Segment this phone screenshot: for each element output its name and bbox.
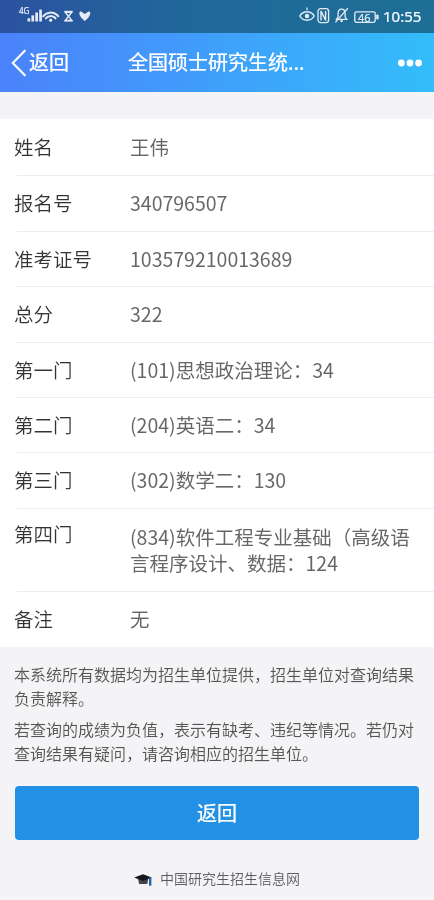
staticText: 返回 (197, 798, 237, 827)
button[interactable]: 返回 (0, 40, 83, 85)
staticText: 报名号 (14, 188, 130, 216)
staticText: 若查询的成绩为负值，表示有缺考、违纪等情况。若仍对查询结果有疑问，请咨询相应的招… (14, 717, 420, 764)
staticText: 总分 (14, 299, 130, 327)
staticText: 备注 (14, 604, 130, 632)
button[interactable]: 姓名 (0, 119, 434, 175)
staticText: 全国硕士研究生统... (128, 47, 305, 76)
button[interactable]: 返回 (15, 786, 419, 840)
staticText: (101)思想政治理论：34 (130, 355, 334, 383)
button[interactable]: 准考证号 (0, 231, 434, 286)
staticText: 返回 (29, 47, 69, 76)
staticText: 322 (130, 299, 163, 327)
staticText: 340796507 (130, 188, 228, 216)
button[interactable]: 第四门 (0, 508, 434, 591)
button[interactable]: 第二门 (0, 397, 434, 452)
staticText: 第一门 (14, 355, 130, 383)
button[interactable]: 备注 (0, 591, 434, 647)
staticText: (302)数学二：130 (130, 465, 287, 493)
staticText: 46 (358, 10, 371, 25)
staticText: 本系统所有数据均为招生单位提供，招生单位对查询结果负责解释。 (14, 662, 420, 709)
staticText: 第三门 (14, 465, 130, 493)
staticText: 4G (19, 5, 30, 16)
staticText: 无 (130, 604, 150, 632)
button[interactable]: 报名号 (0, 175, 434, 231)
staticText: 第二门 (14, 410, 130, 438)
button[interactable]: 第一门 (0, 342, 434, 397)
button[interactable]: 第三门 (0, 452, 434, 508)
staticText: 10:55 (383, 6, 422, 26)
staticText: 中国研究生招生信息网 (160, 868, 300, 888)
staticText: 王伟 (130, 132, 170, 160)
staticText: 准考证号 (14, 244, 130, 272)
button[interactable]: 总分 (0, 286, 434, 342)
staticText: (204)英语二：34 (130, 410, 276, 438)
staticText: 第四门 (14, 519, 130, 547)
button[interactable]: More options (386, 41, 434, 85)
staticText: 103579210013689 (130, 244, 293, 272)
staticText: (834)软件工程专业基础（高级语言程序设计、数据：124 (130, 522, 420, 576)
staticText: 姓名 (14, 132, 130, 160)
